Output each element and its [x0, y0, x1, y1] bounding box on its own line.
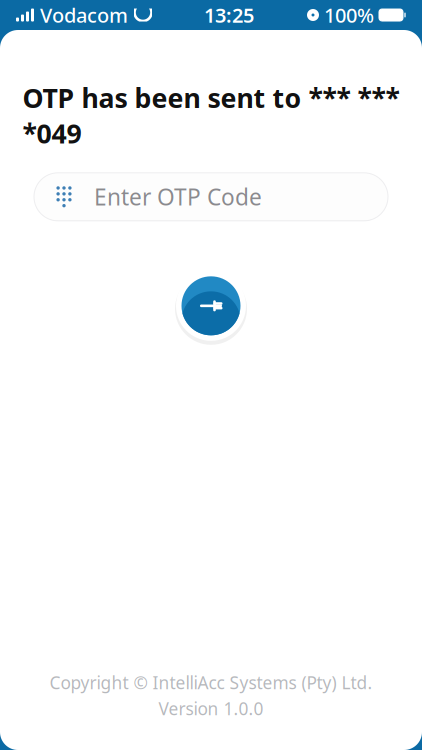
staticText: 13:25 — [204, 2, 254, 28]
staticText: Vodacom — [40, 2, 128, 28]
staticText: OTP has been sent to *** *** *049 — [22, 80, 399, 151]
staticText: Enter OTP Code — [94, 182, 262, 212]
button[interactable]: Submit OTP — [173, 265, 249, 347]
staticText: Copyright © IntelliAcc Systems (Pty) Ltd… — [49, 671, 372, 694]
button[interactable]: Enter OTP Code — [34, 173, 388, 221]
staticText: Version 1.0.0 — [158, 697, 263, 720]
staticText: 100% — [324, 2, 374, 28]
